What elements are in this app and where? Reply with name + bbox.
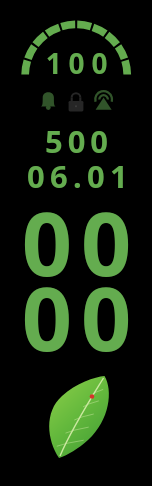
staticText: 00: [5, 257, 152, 377]
staticText: 00: [5, 182, 152, 302]
staticText: 500: [3, 120, 152, 162]
staticText: 06.01: [4, 155, 152, 197]
staticText: 100: [4, 44, 152, 82]
